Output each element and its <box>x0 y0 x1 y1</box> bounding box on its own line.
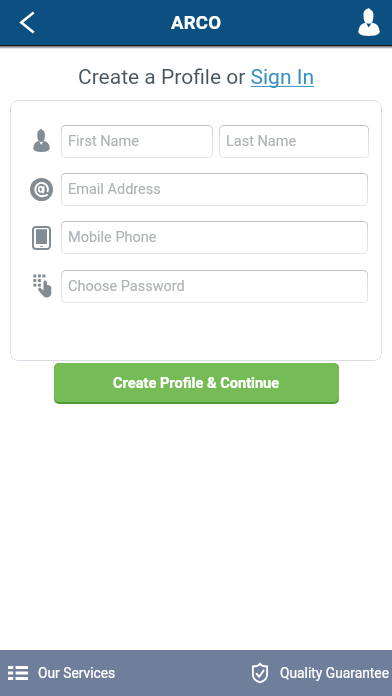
button[interactable]: Back <box>0 0 54 45</box>
button[interactable]: Choose Password <box>61 270 368 303</box>
button[interactable]: Last Name <box>219 125 369 158</box>
button[interactable]: Quality Guarantee <box>252 650 392 696</box>
button[interactable]: First Name <box>61 125 213 158</box>
staticText: Create Profile & Continue <box>113 374 280 391</box>
staticText: Mobile Phone <box>68 229 157 246</box>
staticText: Last Name <box>226 133 297 150</box>
button[interactable]: Email Address <box>61 173 368 206</box>
button[interactable]: Our Services <box>0 650 252 696</box>
staticText: Email Address <box>68 181 161 198</box>
button[interactable]: Create Profile & Continue <box>54 363 339 404</box>
button[interactable]: Profile <box>345 0 392 45</box>
staticText: Choose Password <box>68 278 185 295</box>
button[interactable]: Create a Profile or Sign In <box>78 65 315 90</box>
staticText: ARCO <box>171 12 222 34</box>
staticText: Our Services <box>38 665 116 681</box>
staticText: First Name <box>68 133 139 150</box>
staticText: Quality Guarantee <box>280 665 389 681</box>
button[interactable]: Mobile Phone <box>61 221 368 254</box>
